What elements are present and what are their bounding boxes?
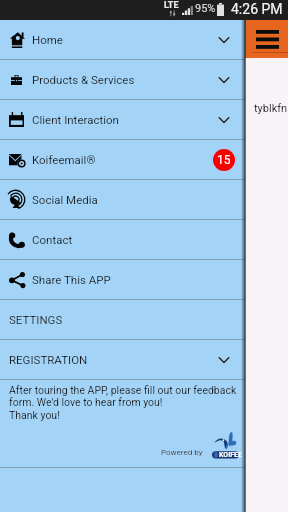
button[interactable]: SETTINGS — [0, 300, 245, 339]
button[interactable]: Contact — [0, 220, 245, 259]
staticText: Powered by — [161, 448, 203, 457]
button[interactable]: REGISTRATION — [0, 340, 245, 379]
staticText: Products & Services — [32, 73, 135, 86]
button[interactable]: Share This APP — [0, 260, 245, 299]
button[interactable]: Koifeemail® — [0, 140, 245, 179]
button[interactable]: Client Interaction — [0, 100, 245, 139]
staticText: LTE — [164, 0, 179, 11]
button[interactable]: Products & Services — [0, 60, 245, 99]
staticText: SETTINGS — [9, 313, 63, 326]
staticText: After touring the APP, please fill out o… — [9, 384, 237, 422]
staticText: 4:26 PM — [231, 1, 283, 17]
button[interactable]: Open navigation drawer — [250, 23, 284, 55]
staticText: Client Interaction — [32, 113, 119, 126]
button[interactable]: Social Media — [0, 180, 245, 219]
staticText: Share This APP — [32, 273, 111, 286]
staticText: 15 — [217, 153, 231, 167]
staticText: Social Media — [32, 193, 98, 206]
staticText: tyblkfn — [254, 102, 288, 115]
staticText: 95% — [195, 2, 216, 15]
staticText: KOIFEE — [219, 451, 242, 459]
staticText: REGISTRATION — [9, 353, 88, 366]
staticText: Koifeemail® — [32, 153, 96, 166]
staticText: Home — [32, 33, 63, 46]
staticText: Contact — [32, 233, 73, 246]
button[interactable]: Home — [0, 20, 245, 59]
